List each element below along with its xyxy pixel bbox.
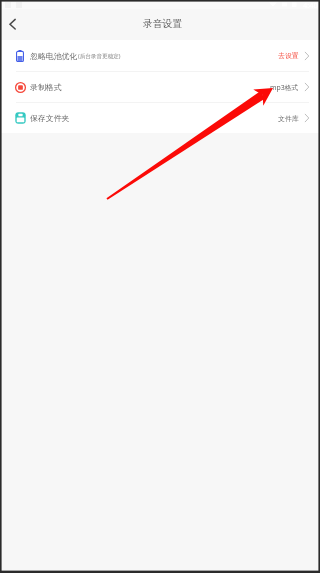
staticText: 保存文件夹: [30, 113, 70, 123]
button[interactable]: 忽略电池优化: [0, 40, 320, 71]
staticText: 录音设置: [143, 18, 183, 30]
staticText: 录制格式: [30, 82, 62, 92]
staticText: 4:40: [303, 0, 318, 9]
staticText: 忽略电池优化: [30, 51, 78, 61]
staticText: 去设置: [278, 51, 299, 60]
button[interactable]: Back: [1, 14, 23, 36]
staticText: 文件库: [278, 114, 299, 123]
button[interactable]: 保存文件夹: [0, 103, 320, 133]
staticText: mp3格式: [270, 83, 299, 92]
button[interactable]: 录制格式: [0, 72, 320, 102]
staticText: (后台录音更稳定): [78, 52, 121, 60]
